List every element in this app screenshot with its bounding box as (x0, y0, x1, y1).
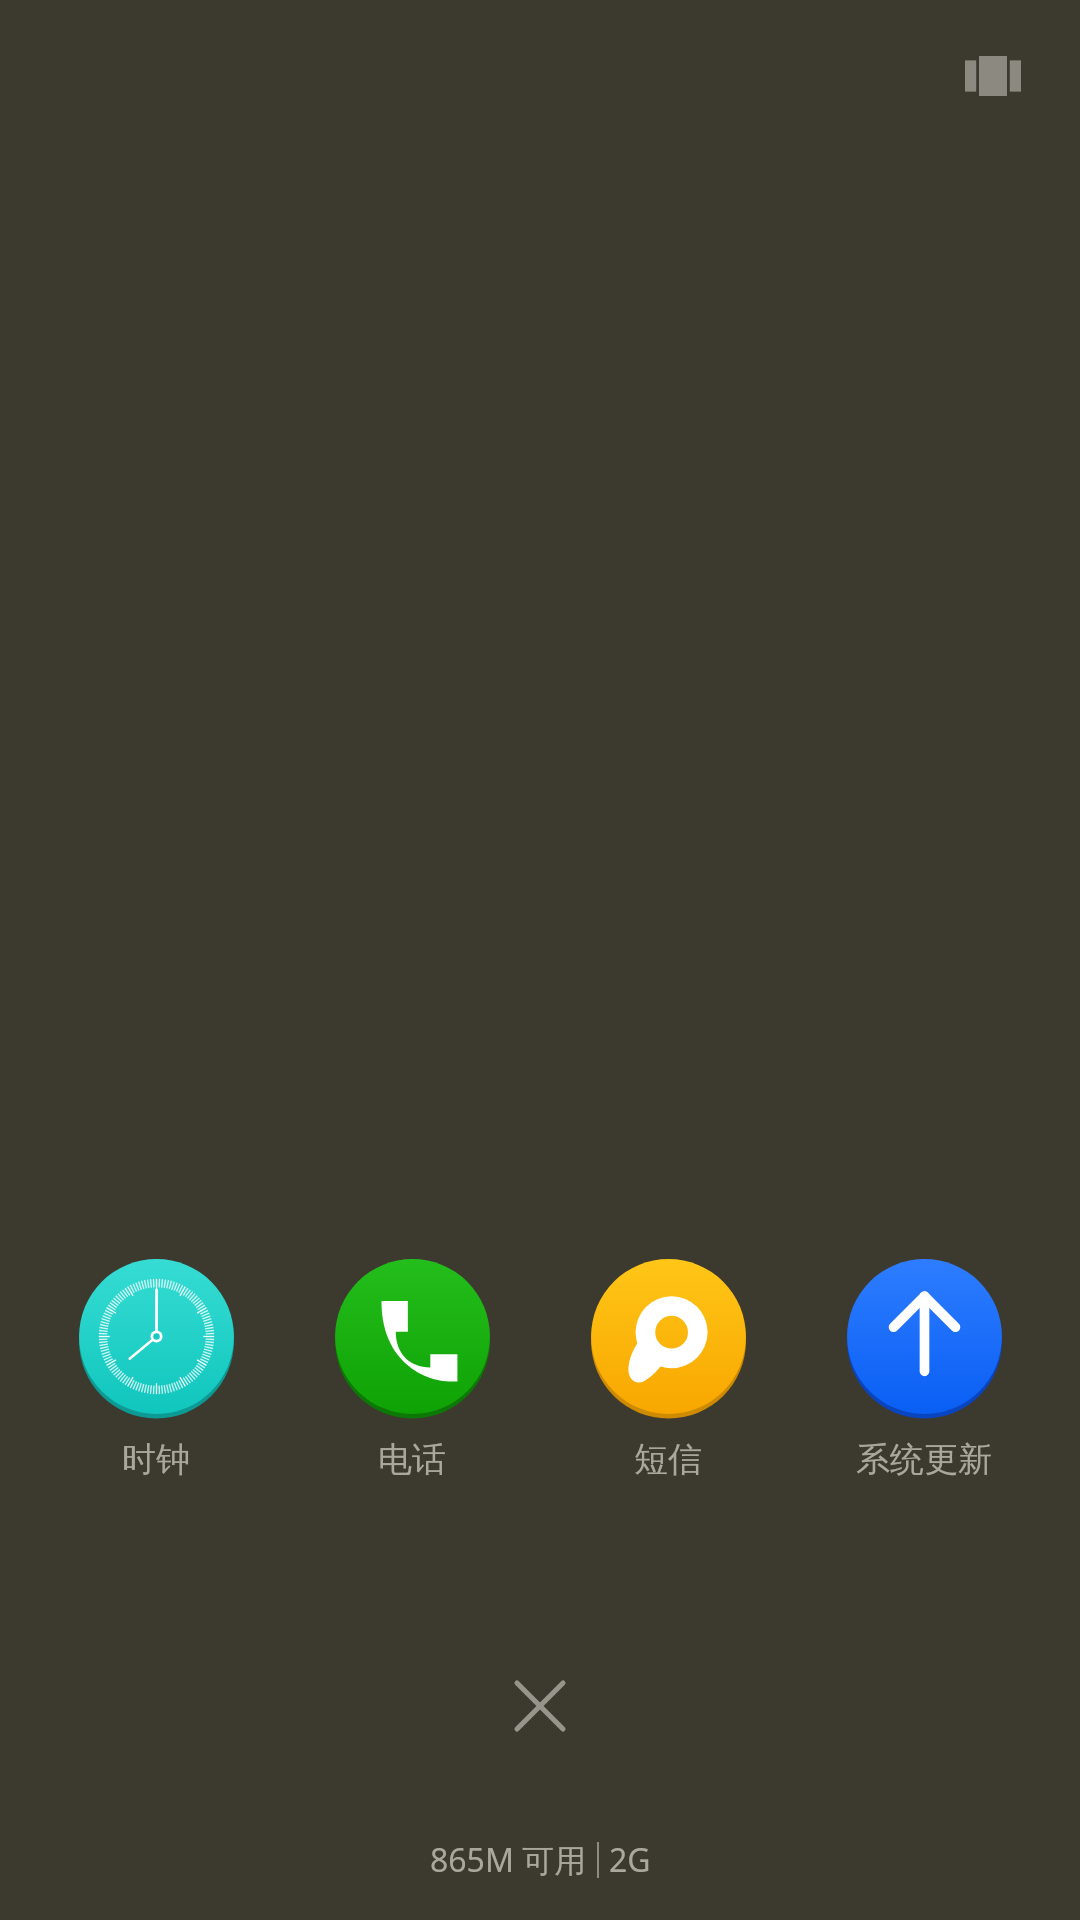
button[interactable]: System update (824, 1255, 1024, 1481)
staticText: 865M 可用 (430, 1838, 587, 1882)
button[interactable]: Messages (568, 1255, 768, 1481)
button[interactable]: Close all apps (492, 1658, 588, 1754)
staticText: 短信 (634, 1438, 702, 1481)
button[interactable]: Phone (312, 1255, 512, 1481)
button[interactable]: Clock (56, 1255, 256, 1481)
staticText: 系统更新 (856, 1438, 992, 1481)
staticText: 电话 (378, 1438, 446, 1481)
button[interactable]: Switch view (960, 48, 1026, 104)
staticText: 2G (609, 1838, 651, 1882)
staticText: 时钟 (122, 1438, 190, 1481)
